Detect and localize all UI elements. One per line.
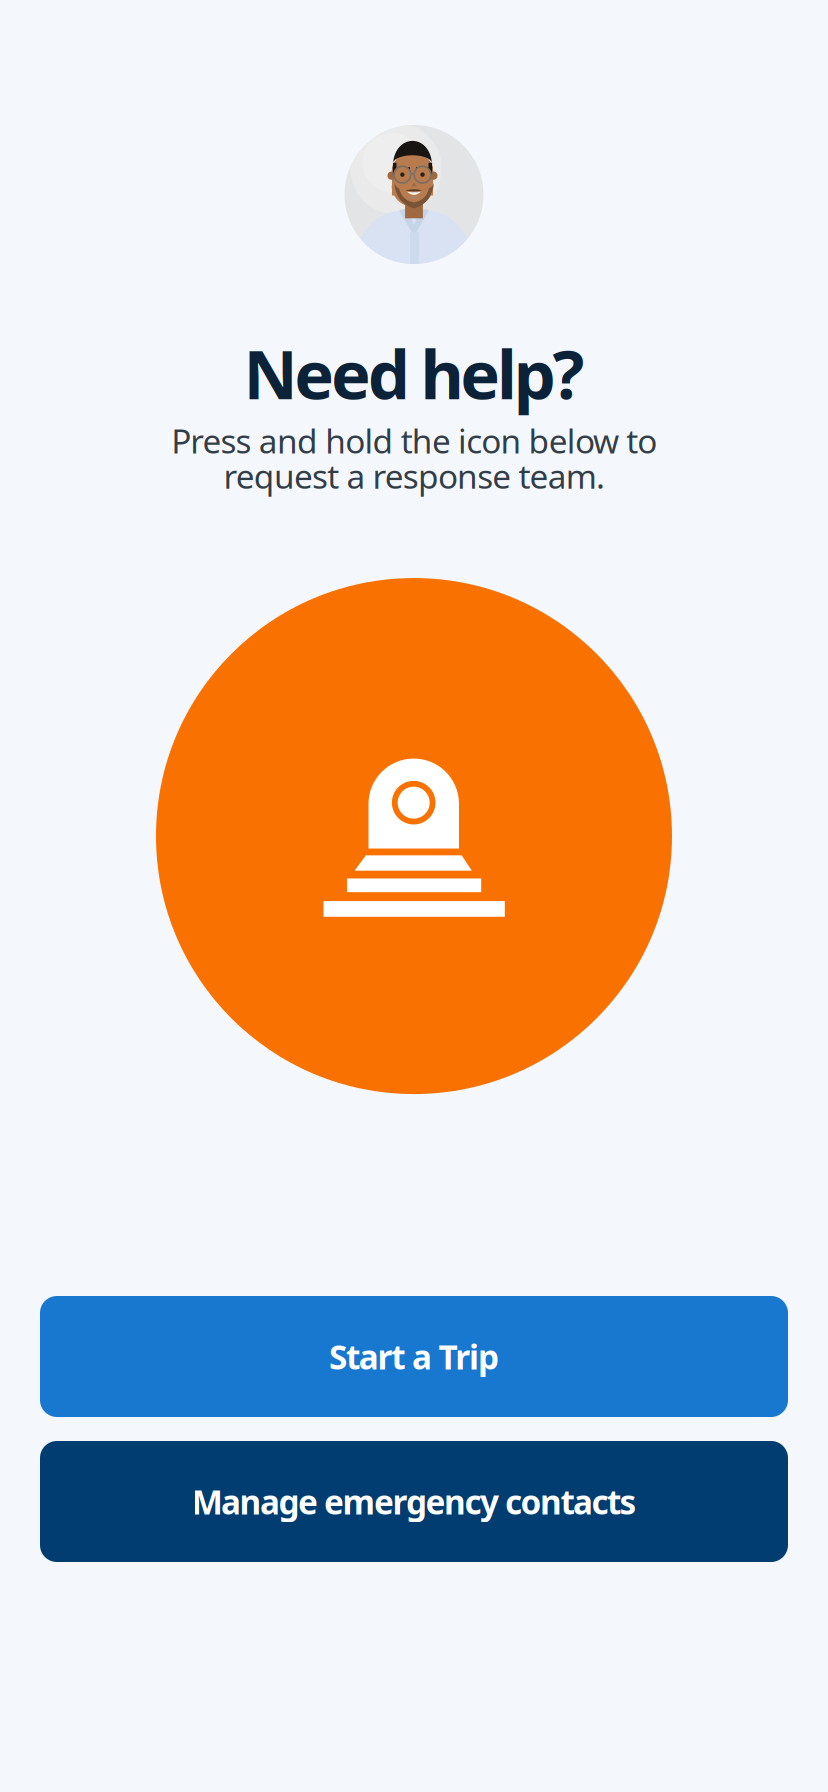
button[interactable]: Start a Trip [40, 1296, 788, 1417]
staticText: Manage emergency contacts [191, 1479, 636, 1524]
button[interactable]: Manage emergency contacts [40, 1441, 788, 1562]
button[interactable]: Request a response team [156, 578, 672, 1094]
staticText: Need help? [243, 329, 585, 417]
staticText: Start a Trip [329, 1334, 499, 1379]
staticText: Press and hold the icon below to request… [171, 418, 657, 498]
